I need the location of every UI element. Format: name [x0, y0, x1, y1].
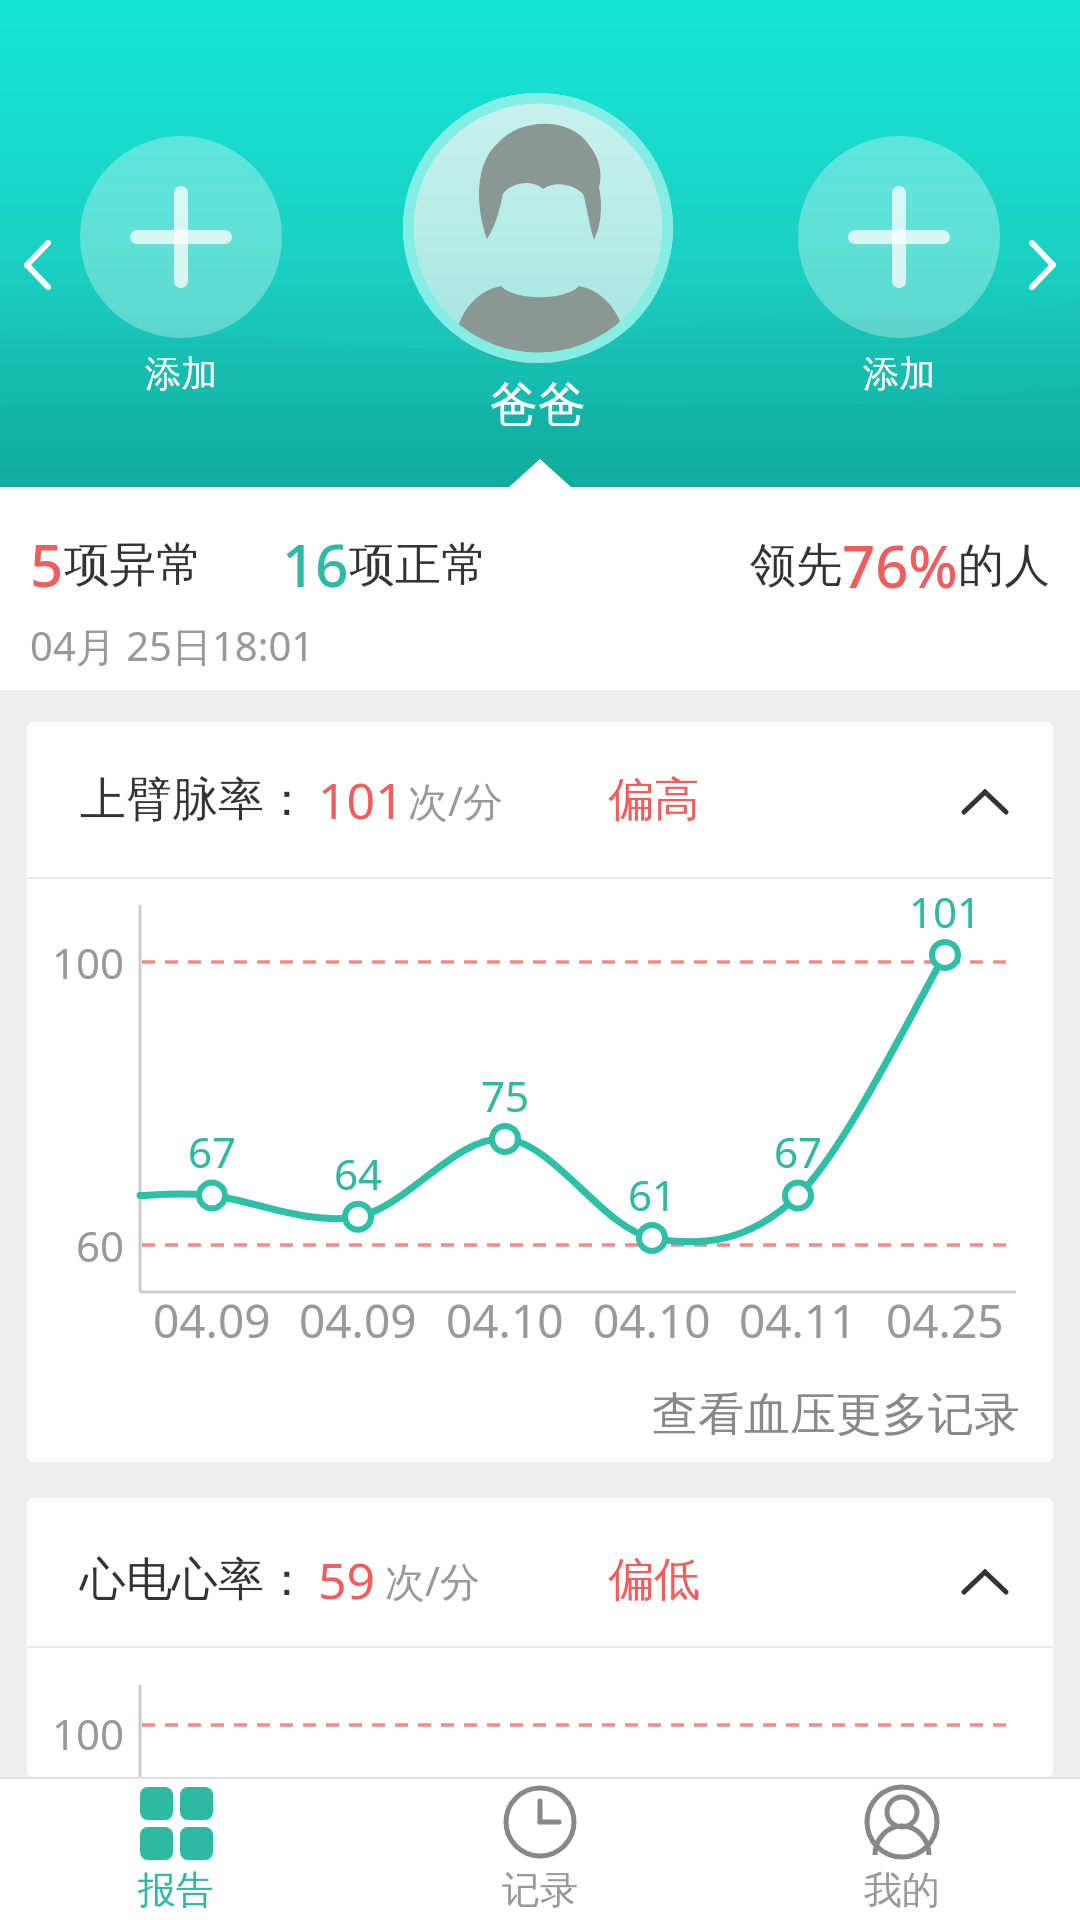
staticText: 59 — [318, 1546, 376, 1614]
staticText: 101 — [909, 883, 982, 940]
staticText: 04.11 — [739, 1289, 857, 1352]
staticText: 04.09 — [299, 1289, 417, 1352]
button[interactable] — [424, 1777, 656, 1920]
staticText: 添加 — [863, 351, 935, 396]
staticText: 75 — [481, 1067, 530, 1124]
staticText: 04.10 — [593, 1289, 711, 1352]
staticText: 项正常 — [349, 536, 487, 594]
staticText: 100 — [52, 934, 125, 991]
button[interactable] — [60, 1777, 292, 1920]
staticText: 的人 — [958, 537, 1050, 595]
staticText: 添加 — [145, 351, 217, 396]
staticText: 61 — [628, 1166, 677, 1223]
staticText: 爸爸 — [490, 375, 586, 435]
staticText: 我的 — [864, 1866, 940, 1914]
staticText: 67 — [774, 1123, 823, 1180]
staticText: 76% — [842, 526, 958, 605]
staticText: 100 — [52, 1705, 125, 1762]
staticText: 报告 — [138, 1866, 214, 1914]
staticText: 记录 — [502, 1866, 578, 1914]
staticText: 次/分 — [408, 773, 503, 828]
staticText: 04月 25日18:01 — [30, 618, 315, 673]
button[interactable] — [80, 136, 282, 338]
staticText: 上臂脉率： — [80, 771, 310, 829]
staticText: 偏低 — [608, 1551, 700, 1609]
staticText: 5 — [30, 525, 64, 604]
button[interactable] — [403, 93, 673, 363]
staticText: 16 — [282, 525, 349, 604]
staticText: 64 — [334, 1145, 383, 1202]
staticText: 67 — [188, 1123, 237, 1180]
staticText: 次/分 — [385, 1553, 480, 1608]
staticText: 101 — [318, 766, 404, 834]
staticText: 项异常 — [64, 536, 202, 594]
button[interactable] — [798, 136, 1000, 338]
staticText: 查看血压更多记录 — [652, 1386, 1020, 1444]
staticText: 心电心率： — [80, 1551, 310, 1609]
staticText: 领先 — [750, 537, 842, 595]
staticText: 04.09 — [153, 1289, 271, 1352]
staticText: 04.25 — [886, 1289, 1004, 1352]
button[interactable]: 查看血压更多记录 — [600, 1382, 1020, 1448]
button[interactable] — [788, 1777, 1020, 1920]
staticText: 偏高 — [608, 771, 700, 829]
staticText: 04.10 — [446, 1289, 564, 1352]
staticText: 60 — [76, 1217, 125, 1274]
